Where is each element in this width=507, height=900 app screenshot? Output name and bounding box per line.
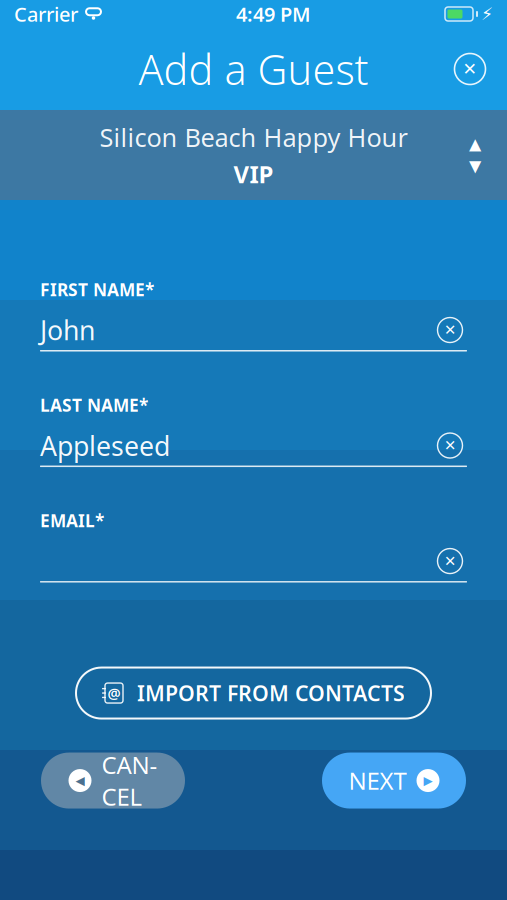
staticText: ▶ xyxy=(423,774,432,787)
staticText: IMPORT FROM CONTACTS xyxy=(137,679,405,707)
button[interactable]: Silicon Beach Happy Hour xyxy=(0,110,507,200)
button[interactable]: Clear LAST NAME* xyxy=(433,428,467,462)
staticText: 4:49 PM xyxy=(236,1,311,27)
staticText: John xyxy=(40,312,95,348)
staticText: CANCEL xyxy=(101,749,157,812)
staticText: LAST NAME* xyxy=(40,393,148,416)
button[interactable]: @ xyxy=(76,668,431,719)
staticText: ✕ xyxy=(444,553,456,569)
staticText: ✕ xyxy=(444,322,456,338)
staticText: ▼ xyxy=(469,157,481,175)
button[interactable]: Close xyxy=(447,46,493,92)
staticText: NEXT xyxy=(348,765,406,796)
staticText: ✕ xyxy=(462,59,477,79)
staticText: ▲ xyxy=(469,135,481,153)
staticText: Silicon Beach Happy Hour xyxy=(99,120,407,154)
staticText: @ xyxy=(107,683,120,703)
button[interactable]: Clear EMAIL* xyxy=(433,544,467,578)
staticText: Add a Guest xyxy=(138,42,368,96)
staticText: ◀ xyxy=(75,774,84,787)
staticText: Carrier xyxy=(14,1,78,27)
button[interactable]: NEXT xyxy=(322,753,466,809)
staticText: ✕ xyxy=(444,437,456,454)
button[interactable]: Clear FIRST NAME* xyxy=(433,313,467,347)
staticText: ⚡︎ xyxy=(481,4,493,24)
staticText: Appleseed xyxy=(40,428,170,463)
staticText: VIP xyxy=(233,158,273,190)
staticText: FIRST NAME* xyxy=(40,278,154,301)
staticText: EMAIL* xyxy=(40,509,104,532)
button[interactable]: ◀ xyxy=(41,753,185,809)
